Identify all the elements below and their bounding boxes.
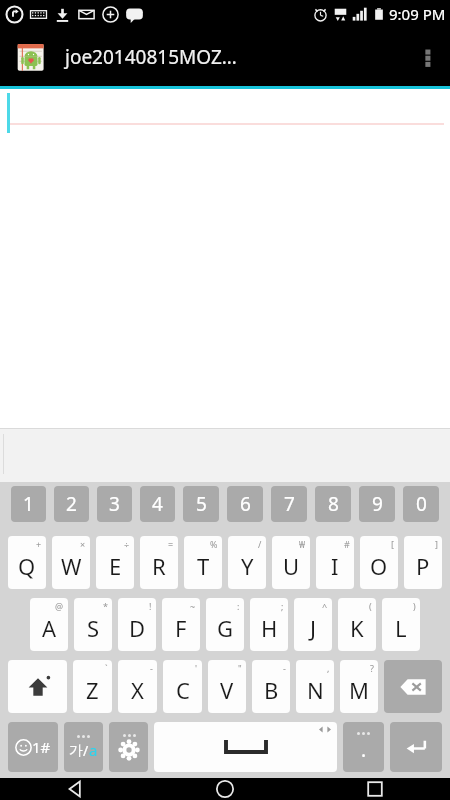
- staticText: W: [61, 551, 82, 581]
- staticText: @: [55, 600, 64, 612]
- button[interactable]: Backspace: [384, 660, 442, 713]
- button[interactable]: (: [338, 598, 376, 651]
- staticText: X: [131, 675, 144, 705]
- staticText: J: [310, 613, 317, 643]
- button[interactable]: 4: [140, 486, 175, 522]
- staticText: =: [168, 538, 174, 550]
- button[interactable]: 6: [227, 486, 263, 522]
- button[interactable]: [0, 89, 450, 428]
- staticText: /: [258, 538, 262, 550]
- staticText: C: [176, 675, 190, 705]
- staticText: !: [149, 600, 152, 612]
- staticText: P: [416, 551, 430, 581]
- staticText: ): [413, 600, 416, 612]
- button[interactable]: Period: [343, 722, 384, 772]
- staticText: (: [369, 600, 372, 612]
- button[interactable]: -: [118, 660, 157, 713]
- button[interactable]: !: [118, 598, 156, 651]
- staticText: K: [350, 613, 364, 643]
- staticText: ×: [80, 538, 86, 550]
- button[interactable]: 5: [183, 486, 219, 522]
- staticText: G: [217, 613, 234, 643]
- button[interactable]: ,: [296, 660, 334, 713]
- button[interactable]: 9: [359, 486, 395, 522]
- staticText: +: [36, 538, 42, 550]
- staticText: ^: [322, 600, 328, 612]
- button[interactable]: ÷: [96, 536, 134, 589]
- button[interactable]: @: [30, 598, 68, 651]
- button[interactable]: 8: [315, 486, 351, 522]
- staticText: ': [195, 662, 198, 674]
- staticText: ,: [327, 662, 330, 674]
- staticText: ?: [370, 662, 374, 674]
- staticText: V: [220, 675, 234, 705]
- staticText: ]: [435, 538, 438, 550]
- staticText: 6: [240, 491, 251, 517]
- staticText: /: [83, 741, 89, 760]
- staticText: 4: [152, 491, 163, 517]
- staticText: 8: [328, 491, 339, 517]
- staticText: 0: [416, 491, 427, 517]
- staticText: H: [261, 613, 278, 643]
- button[interactable]: ₩: [272, 536, 310, 589]
- button[interactable]: ^: [294, 598, 332, 651]
- button[interactable]: /: [228, 536, 266, 589]
- button[interactable]: Space: [154, 722, 337, 772]
- button[interactable]: =: [140, 536, 178, 589]
- button[interactable]: Change language: [64, 722, 103, 772]
- staticText: F: [175, 613, 187, 643]
- staticText: L: [395, 613, 407, 643]
- staticText: T: [197, 551, 210, 581]
- button[interactable]: :: [206, 598, 244, 651]
- staticText: :: [237, 600, 240, 612]
- button[interactable]: 2: [54, 486, 89, 522]
- staticText: ÷: [124, 538, 130, 550]
- staticText: a: [89, 740, 98, 760]
- button[interactable]: Recent apps: [300, 778, 450, 800]
- button[interactable]: Symbols and emoji: [8, 722, 58, 772]
- button[interactable]: Enter: [390, 722, 442, 772]
- button[interactable]: +: [8, 536, 46, 589]
- button[interactable]: ): [382, 598, 420, 651]
- staticText: D: [129, 613, 146, 643]
- button[interactable]: ~: [162, 598, 200, 651]
- button[interactable]: 3: [97, 486, 132, 522]
- button[interactable]: Shift: [8, 660, 67, 713]
- button[interactable]: %: [184, 536, 222, 589]
- staticText: Z: [86, 675, 99, 705]
- staticText: 1#: [32, 737, 51, 757]
- button[interactable]: Home: [150, 778, 300, 800]
- staticText: Y: [241, 551, 254, 581]
- button[interactable]: ?: [340, 660, 378, 713]
- button[interactable]: `: [73, 660, 112, 713]
- button[interactable]: Keyboard settings: [109, 722, 148, 772]
- button[interactable]: More options: [406, 28, 450, 86]
- staticText: B: [264, 675, 279, 705]
- button[interactable]: ]: [404, 536, 442, 589]
- staticText: 가: [69, 742, 83, 760]
- staticText: %: [210, 538, 218, 550]
- staticText: joe20140815MOZ…: [65, 44, 237, 70]
- button[interactable]: Back: [0, 778, 150, 800]
- button[interactable]: ×: [52, 536, 90, 589]
- button[interactable]: ;: [250, 598, 288, 651]
- staticText: E: [109, 551, 122, 581]
- staticText: 2: [66, 491, 77, 517]
- button[interactable]: 7: [271, 486, 307, 522]
- staticText: S: [87, 613, 100, 643]
- button[interactable]: *: [74, 598, 112, 651]
- button[interactable]: ": [208, 660, 246, 713]
- staticText: 9: [372, 491, 383, 517]
- button[interactable]: ': [163, 660, 202, 713]
- staticText: 5: [196, 491, 207, 517]
- button[interactable]: 1: [11, 486, 46, 522]
- staticText: ": [238, 662, 242, 674]
- button[interactable]: #: [316, 536, 354, 589]
- staticText: `: [105, 662, 108, 674]
- staticText: 9:09 PM: [389, 4, 446, 24]
- button[interactable]: -: [252, 660, 290, 713]
- staticText: ;: [281, 600, 284, 612]
- staticText: *: [103, 600, 108, 612]
- button[interactable]: 0: [403, 486, 439, 522]
- button[interactable]: [: [360, 536, 398, 589]
